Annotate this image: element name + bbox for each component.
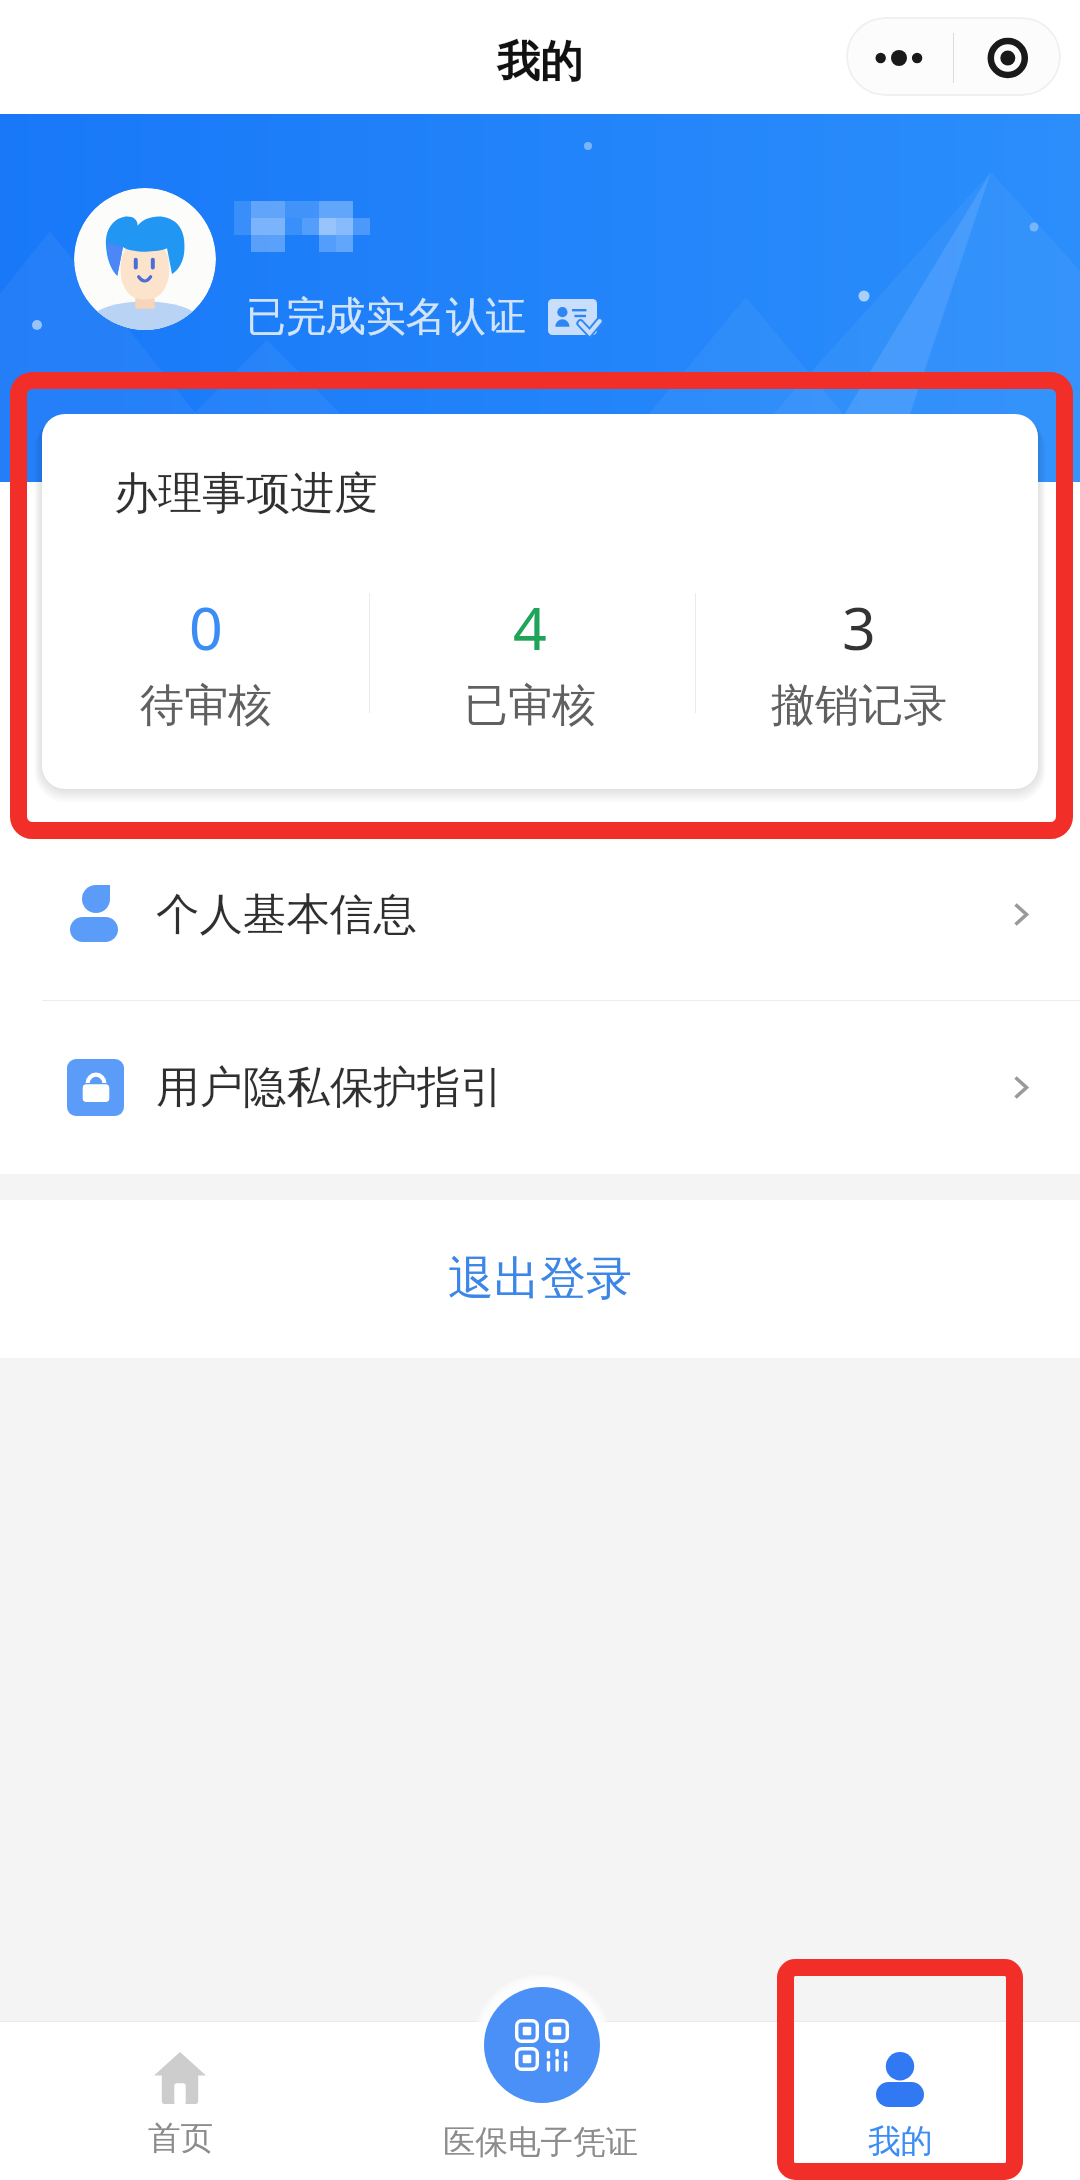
staticText: 办理事项进度 — [114, 466, 378, 521]
staticText: 已完成实名认证 — [246, 291, 526, 341]
button[interactable]: 退出登录 — [0, 1200, 1080, 1358]
staticText: 0 — [189, 587, 223, 667]
staticText: 4 — [513, 587, 547, 667]
button[interactable]: 首页 — [0, 2021, 360, 2180]
button[interactable]: 已完成实名认证 — [240, 284, 610, 340]
staticText: 待审核 — [140, 678, 272, 733]
staticText: 退出登录 — [448, 1250, 632, 1308]
button[interactable]: 3 — [729, 587, 989, 733]
button[interactable]: 用户隐私保护指引 — [0, 1001, 1080, 1173]
staticText: 我的 — [868, 2121, 933, 2162]
staticText: 撤销记录 — [771, 678, 947, 733]
button[interactable]: 4 — [400, 587, 660, 733]
button[interactable]: 0 — [76, 587, 336, 733]
button[interactable]: 用户头像 — [74, 188, 216, 330]
staticText: 首页 — [148, 2118, 213, 2159]
staticText: 已审核 — [464, 678, 596, 733]
button[interactable]: Close mini program — [954, 17, 1061, 96]
staticText: 个人基本信息 — [156, 887, 417, 942]
button[interactable]: 个人基本信息 — [0, 828, 1080, 1000]
staticText: 3 — [842, 587, 876, 667]
button[interactable]: 我的 — [720, 2021, 1080, 2180]
button[interactable]: 医保电子凭证 — [484, 1987, 600, 2103]
staticText: 用户隐私保护指引 — [156, 1060, 504, 1115]
staticText: 医保电子凭证 — [443, 2122, 638, 2163]
button[interactable]: More options — [846, 17, 953, 96]
staticText: 我的 — [497, 35, 583, 89]
button[interactable]: 医保电子凭证 — [360, 2021, 720, 2180]
